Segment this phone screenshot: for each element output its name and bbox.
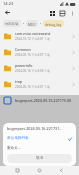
staticText: 2024-05-16 下午3:01 1 项 [15, 85, 50, 89]
button[interactable]: Sort [58, 9, 66, 17]
button[interactable]: tmp [0, 76, 79, 92]
button[interactable]: Back [57, 166, 66, 175]
staticText: 取消 [36, 156, 44, 161]
button[interactable]: Common [0, 44, 79, 60]
button[interactable]: Open [70, 81, 76, 87]
staticText: 内部存储 [5, 22, 19, 26]
button[interactable]: MIUI [26, 20, 38, 27]
button[interactable]: powerinfo [0, 60, 79, 76]
button[interactable]: Recents [13, 166, 22, 175]
staticText: Common [15, 47, 31, 52]
button[interactable]: 取消 [7, 154, 72, 163]
button[interactable]: More options [68, 9, 76, 17]
staticText: 2024-05-16 下午3:06 1 项 [15, 69, 50, 73]
staticText: MIUI [28, 22, 36, 26]
button[interactable]: 单位选择列表 [7, 134, 72, 143]
button[interactable]: 内部存储 [3, 20, 21, 27]
staticText: 2024-10-12 下午4:01 1 项 [15, 37, 50, 41]
staticText: 重命名… [7, 145, 72, 150]
button[interactable]: 重命名… [7, 143, 72, 152]
staticText: 14:23 [3, 1, 14, 6]
staticText: bugreport-2024-05-16-221175.00 [15, 98, 72, 103]
button[interactable]: bugreport-2024-05-16-221175.00 [0, 92, 79, 108]
staticText: 2024-05-16 下午3:07 1 项 [15, 53, 50, 57]
button[interactable]: Open [70, 33, 76, 39]
button[interactable]: Open [70, 49, 76, 55]
button[interactable]: Home [35, 166, 44, 175]
staticText: powerinfo [15, 63, 33, 68]
staticText: debug_log [45, 22, 62, 26]
button[interactable]: Grid view [48, 9, 56, 17]
staticText: 单位选择列表 [7, 136, 68, 141]
staticText: bugreport-2024-05-16-221731... [7, 126, 63, 131]
button[interactable]: debug_log [43, 20, 64, 27]
button[interactable]: Back [3, 8, 12, 17]
button[interactable]: com.miui.voiceassist [0, 28, 79, 44]
button[interactable]: Open [70, 65, 76, 71]
staticText: com.miui.voiceassist [15, 31, 51, 36]
staticText: tmp [15, 79, 23, 84]
